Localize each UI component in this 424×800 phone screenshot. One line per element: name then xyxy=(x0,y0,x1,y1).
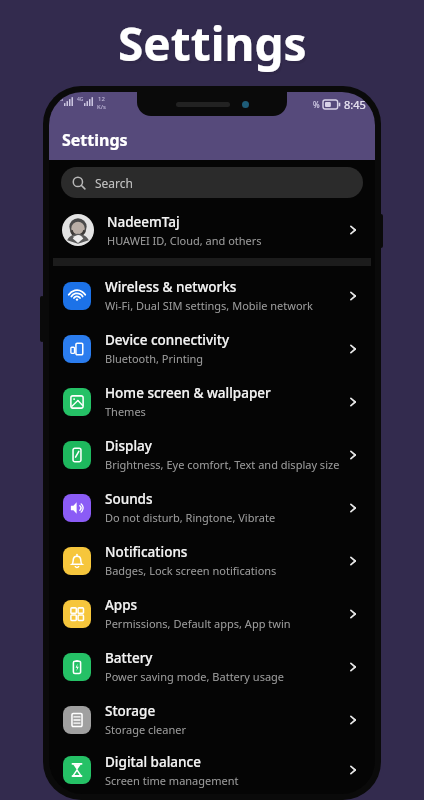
staticText: Battery xyxy=(105,649,153,667)
staticText: Device connectivity xyxy=(105,331,230,349)
staticText: Digital balance xyxy=(105,753,201,771)
button[interactable]: Storage xyxy=(49,693,375,746)
staticText: Power saving mode, Battery usage xyxy=(105,669,285,684)
other: Open xyxy=(343,286,363,306)
other: Open xyxy=(343,760,363,780)
button[interactable]: Notifications xyxy=(49,534,375,587)
staticText: Notifications xyxy=(105,543,188,561)
staticText: Brightness, Eye comfort, Text and displa… xyxy=(105,457,340,472)
staticText: Storage xyxy=(105,702,156,720)
staticText: Do not disturb, Ringtone, Vibrate xyxy=(105,510,276,525)
staticText: Settings xyxy=(62,129,128,151)
staticText: Home screen & wallpaper xyxy=(105,384,271,402)
staticText: 12 xyxy=(98,95,105,103)
staticText: Settings xyxy=(120,15,309,78)
button[interactable]: Sounds xyxy=(49,481,375,534)
other: Open xyxy=(343,710,363,730)
staticText: Storage cleaner xyxy=(105,722,187,737)
staticText: 3G xyxy=(57,96,64,103)
other: Open xyxy=(343,339,363,359)
button[interactable]: Wireless & networks xyxy=(49,269,375,322)
other: Open xyxy=(343,498,363,518)
staticText: 4G xyxy=(77,96,84,103)
staticText: Themes xyxy=(105,404,146,419)
staticText: HUAWEI ID, Cloud, and others xyxy=(107,233,262,248)
button[interactable]: Device connectivity xyxy=(49,322,375,375)
other: Open xyxy=(343,392,363,412)
staticText: Sounds xyxy=(105,490,153,508)
staticText: % xyxy=(313,99,320,110)
staticText: Search xyxy=(95,175,133,191)
staticText: Wireless & networks xyxy=(105,278,237,296)
staticText: K/s xyxy=(97,103,106,111)
button[interactable]: Home screen & wallpaper xyxy=(49,375,375,428)
staticText: Permissions, Default apps, App twin xyxy=(105,616,291,631)
button[interactable]: NadeemTaj xyxy=(49,205,375,255)
staticText: Display xyxy=(105,437,152,455)
other: Open xyxy=(343,604,363,624)
staticText: Settings xyxy=(118,12,307,75)
staticText: Badges, Lock screen notifications xyxy=(105,563,277,578)
staticText: Bluetooth, Printing xyxy=(105,351,204,366)
other: Open xyxy=(343,220,363,240)
button[interactable]: Apps xyxy=(49,587,375,640)
other: Open xyxy=(343,657,363,677)
button[interactable]: Digital balance xyxy=(49,746,375,794)
staticText: Apps xyxy=(105,596,138,614)
button[interactable]: Battery xyxy=(49,640,375,693)
staticText: Wi-Fi, Dual SIM settings, Mobile network xyxy=(105,298,313,313)
staticText: NadeemTaj xyxy=(107,213,180,231)
staticText: 8:45 xyxy=(344,97,366,112)
other: Open xyxy=(343,445,363,465)
button[interactable]: Display xyxy=(49,428,375,481)
staticText: Screen time management xyxy=(105,773,239,788)
button[interactable]: Search xyxy=(61,167,363,198)
other: Open xyxy=(343,551,363,571)
